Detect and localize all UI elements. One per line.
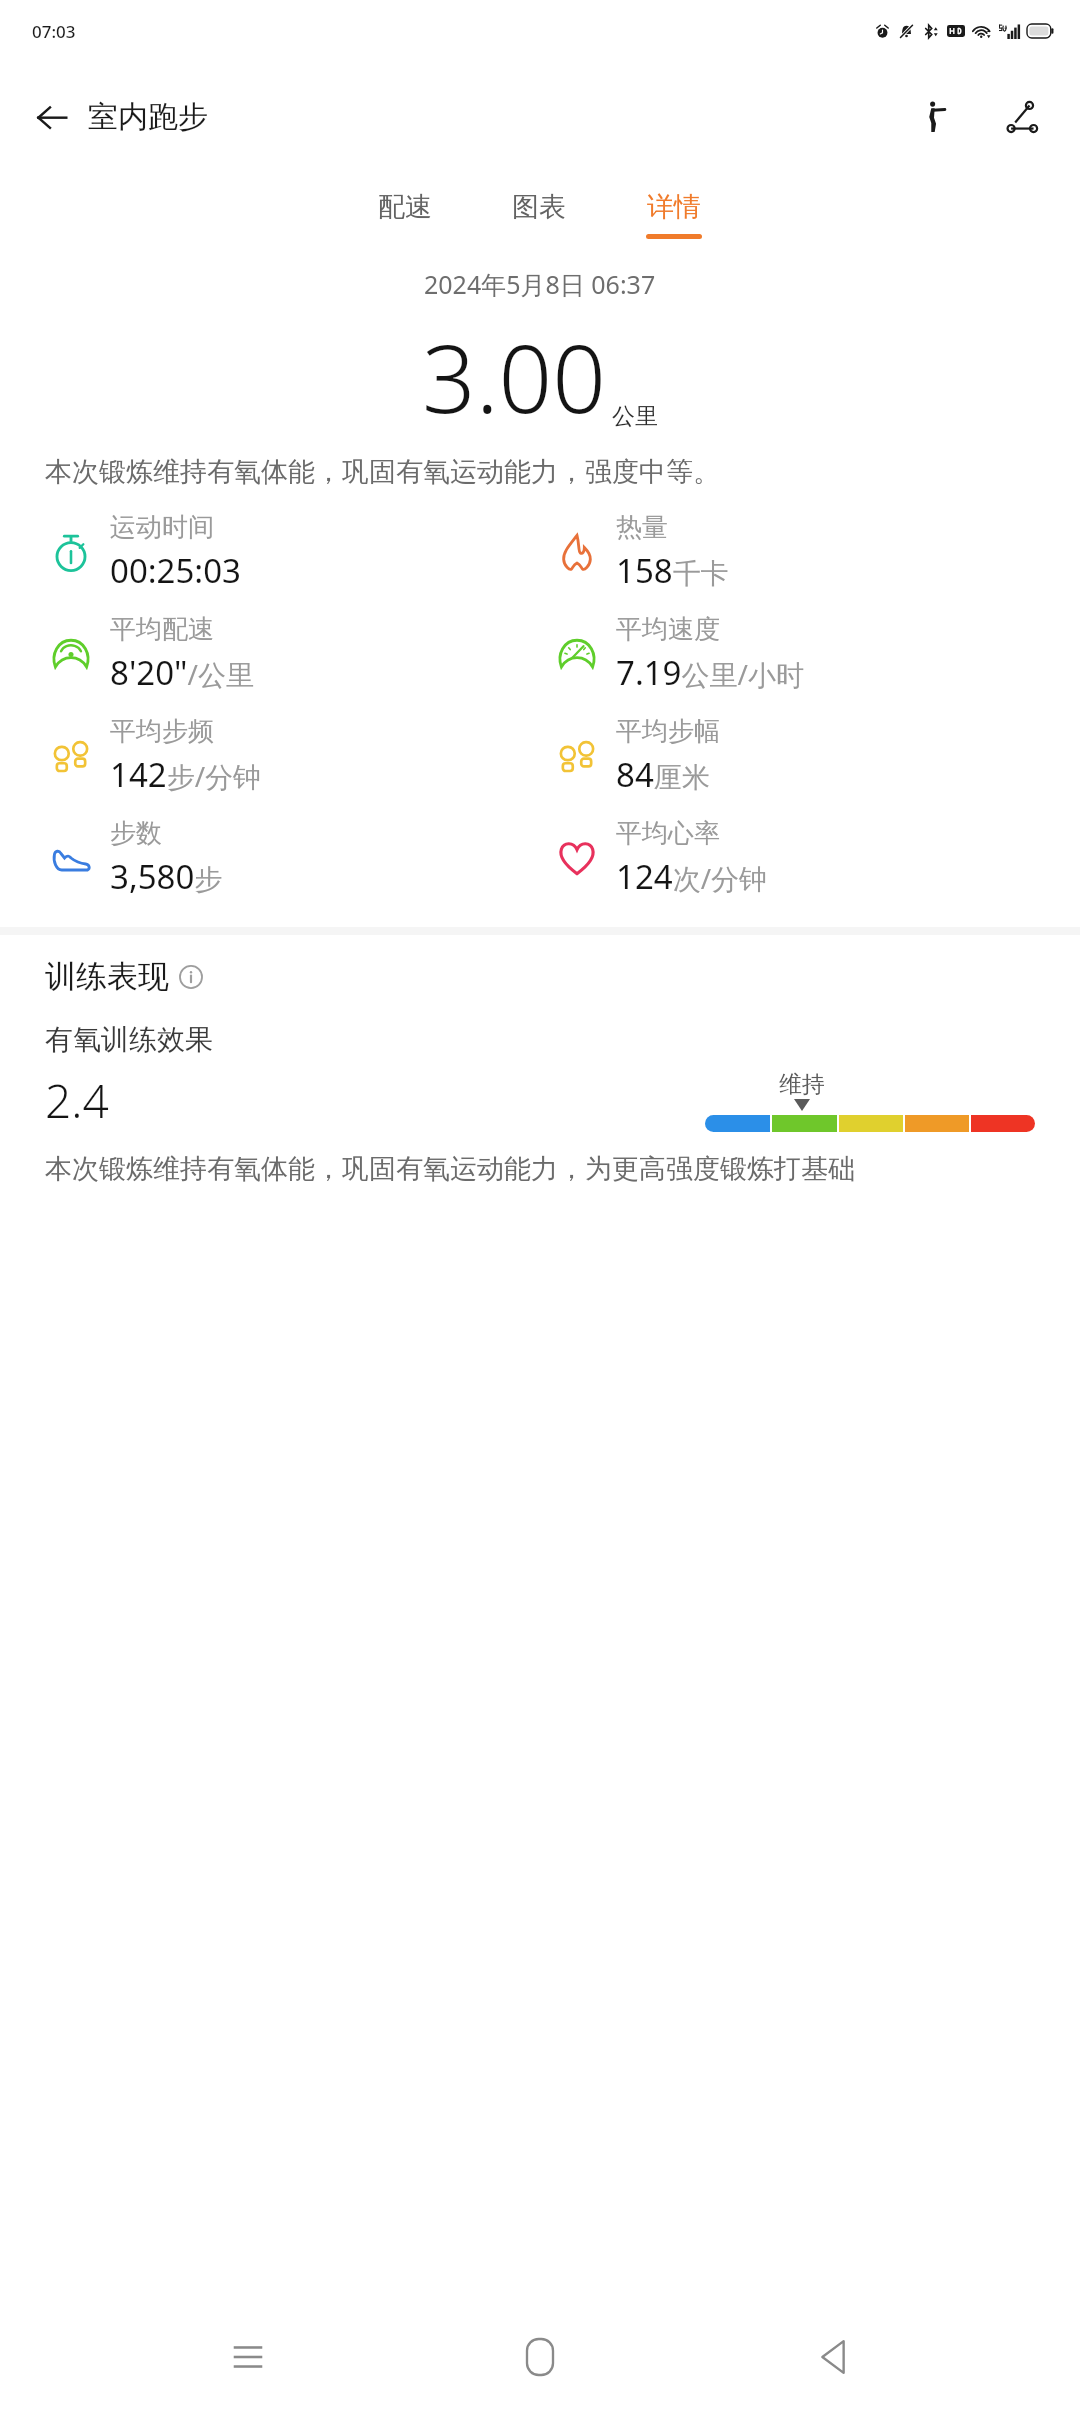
button[interactable]: 图表	[496, 182, 582, 247]
button[interactable]: 运动时间	[48, 507, 554, 597]
staticText: 公里	[612, 402, 658, 431]
staticText: 07:03	[32, 20, 76, 43]
staticText: 运动时间	[110, 511, 214, 544]
staticText: 有氧训练效果	[45, 1022, 213, 1057]
staticText: 142步/分钟	[110, 752, 262, 797]
button[interactable]: 热量	[554, 507, 1060, 597]
button[interactable]: 步数	[48, 813, 554, 903]
button[interactable]: 平均步幅	[554, 711, 1060, 801]
button[interactable]: 训练表现	[45, 957, 203, 996]
button[interactable]: 详情	[630, 182, 718, 247]
staticText: 本次锻炼维持有氧体能，巩固有氧运动能力，为更高强度锻炼打基础	[45, 1152, 855, 1186]
staticText: 平均心率	[616, 817, 720, 850]
staticText: 124次/分钟	[616, 854, 768, 899]
staticText: 00:25:03	[110, 548, 241, 593]
other: Info	[179, 965, 203, 989]
staticText: 平均速度	[616, 613, 720, 646]
staticText: 2.4	[45, 1069, 109, 1132]
staticText: 3.00	[422, 313, 606, 441]
button[interactable]: 平均速度	[554, 609, 1060, 699]
staticText: 本次锻炼维持有氧体能，巩固有氧运动能力，强度中等。	[45, 455, 1035, 489]
staticText: 2024年5月8日 06:37	[424, 267, 656, 301]
button[interactable]: 平均心率	[554, 813, 1060, 903]
staticText: 3,580步	[110, 854, 223, 899]
button[interactable]: Back	[20, 85, 84, 149]
staticText: 图表	[512, 190, 566, 224]
staticText: 平均步幅	[616, 715, 720, 748]
staticText: 训练表现	[45, 957, 169, 996]
staticText: 热量	[616, 511, 668, 544]
button[interactable]: 配速	[362, 182, 448, 247]
staticText: 8'20"/公里	[110, 650, 254, 695]
button[interactable]: 平均步频	[48, 711, 554, 801]
button[interactable]: 平均配速	[48, 609, 554, 699]
staticText: 平均配速	[110, 613, 214, 646]
staticText: 步数	[110, 817, 162, 850]
button[interactable]: Share	[990, 85, 1054, 149]
button[interactable]: Back	[788, 2312, 878, 2402]
staticText: 详情	[647, 190, 701, 224]
staticText: 84厘米	[616, 752, 710, 797]
button[interactable]: Home	[495, 2312, 585, 2402]
staticText: 维持	[779, 1070, 825, 1099]
staticText: 室内跑步	[88, 98, 208, 136]
button[interactable]: Recents	[203, 2312, 293, 2402]
staticText: 配速	[378, 190, 432, 224]
staticText: 7.19公里/小时	[616, 650, 804, 695]
staticText: 158千卡	[616, 548, 729, 593]
staticText: 平均步频	[110, 715, 214, 748]
button[interactable]: Workout type	[902, 85, 966, 149]
